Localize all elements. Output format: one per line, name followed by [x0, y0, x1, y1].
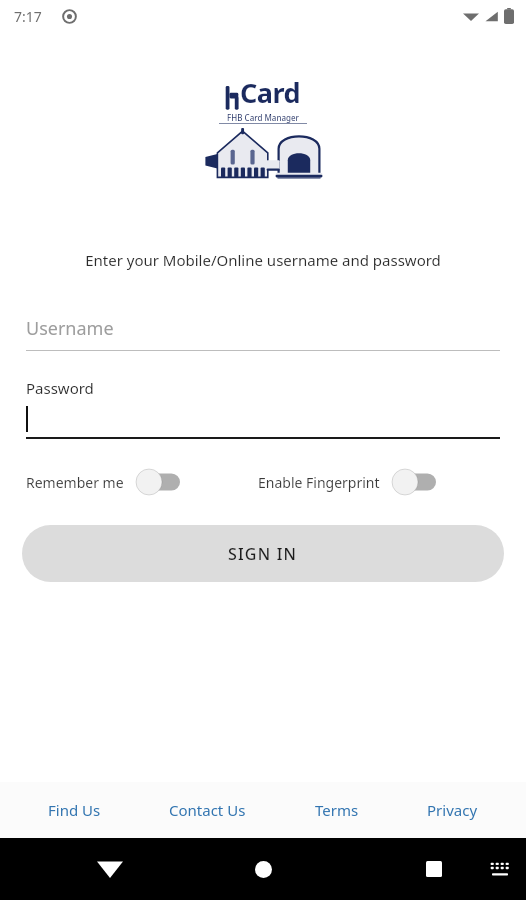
button[interactable]: Enable Fingerprint — [258, 469, 436, 495]
staticText: Username — [26, 316, 114, 341]
button[interactable]: Privacy — [417, 792, 488, 828]
button[interactable]: Home — [241, 847, 285, 891]
button[interactable]: Password — [26, 378, 500, 439]
staticText: 7:17 — [14, 7, 42, 26]
staticText: Find Us — [48, 800, 101, 820]
button[interactable]: Hide keyboard — [88, 847, 132, 891]
button[interactable]: Remember me — [26, 469, 180, 495]
other: Toggle off — [136, 469, 180, 495]
staticText: FHB Card Manager — [227, 112, 299, 123]
button[interactable]: Switch keyboard — [480, 849, 520, 889]
staticText: Enter your Mobile/Online username and pa… — [85, 250, 441, 270]
staticText: Card — [240, 74, 301, 111]
staticText: SIGN IN — [228, 543, 298, 565]
button[interactable]: Find Us — [38, 792, 111, 828]
button[interactable]: Terms — [305, 792, 369, 828]
other: Bank building logo — [203, 128, 323, 180]
staticText: Enable Fingerprint — [258, 473, 380, 492]
staticText: Terms — [315, 800, 359, 820]
staticText: Password — [26, 378, 94, 398]
other: Toggle off — [392, 469, 436, 495]
staticText: Privacy — [427, 800, 478, 820]
staticText: Remember me — [26, 473, 124, 492]
button[interactable]: Contact Us — [159, 792, 256, 828]
button[interactable]: SIGN IN — [22, 525, 504, 582]
button[interactable]: Username — [26, 316, 500, 351]
button[interactable]: Recent apps — [412, 847, 456, 891]
staticText: Contact Us — [169, 800, 246, 820]
